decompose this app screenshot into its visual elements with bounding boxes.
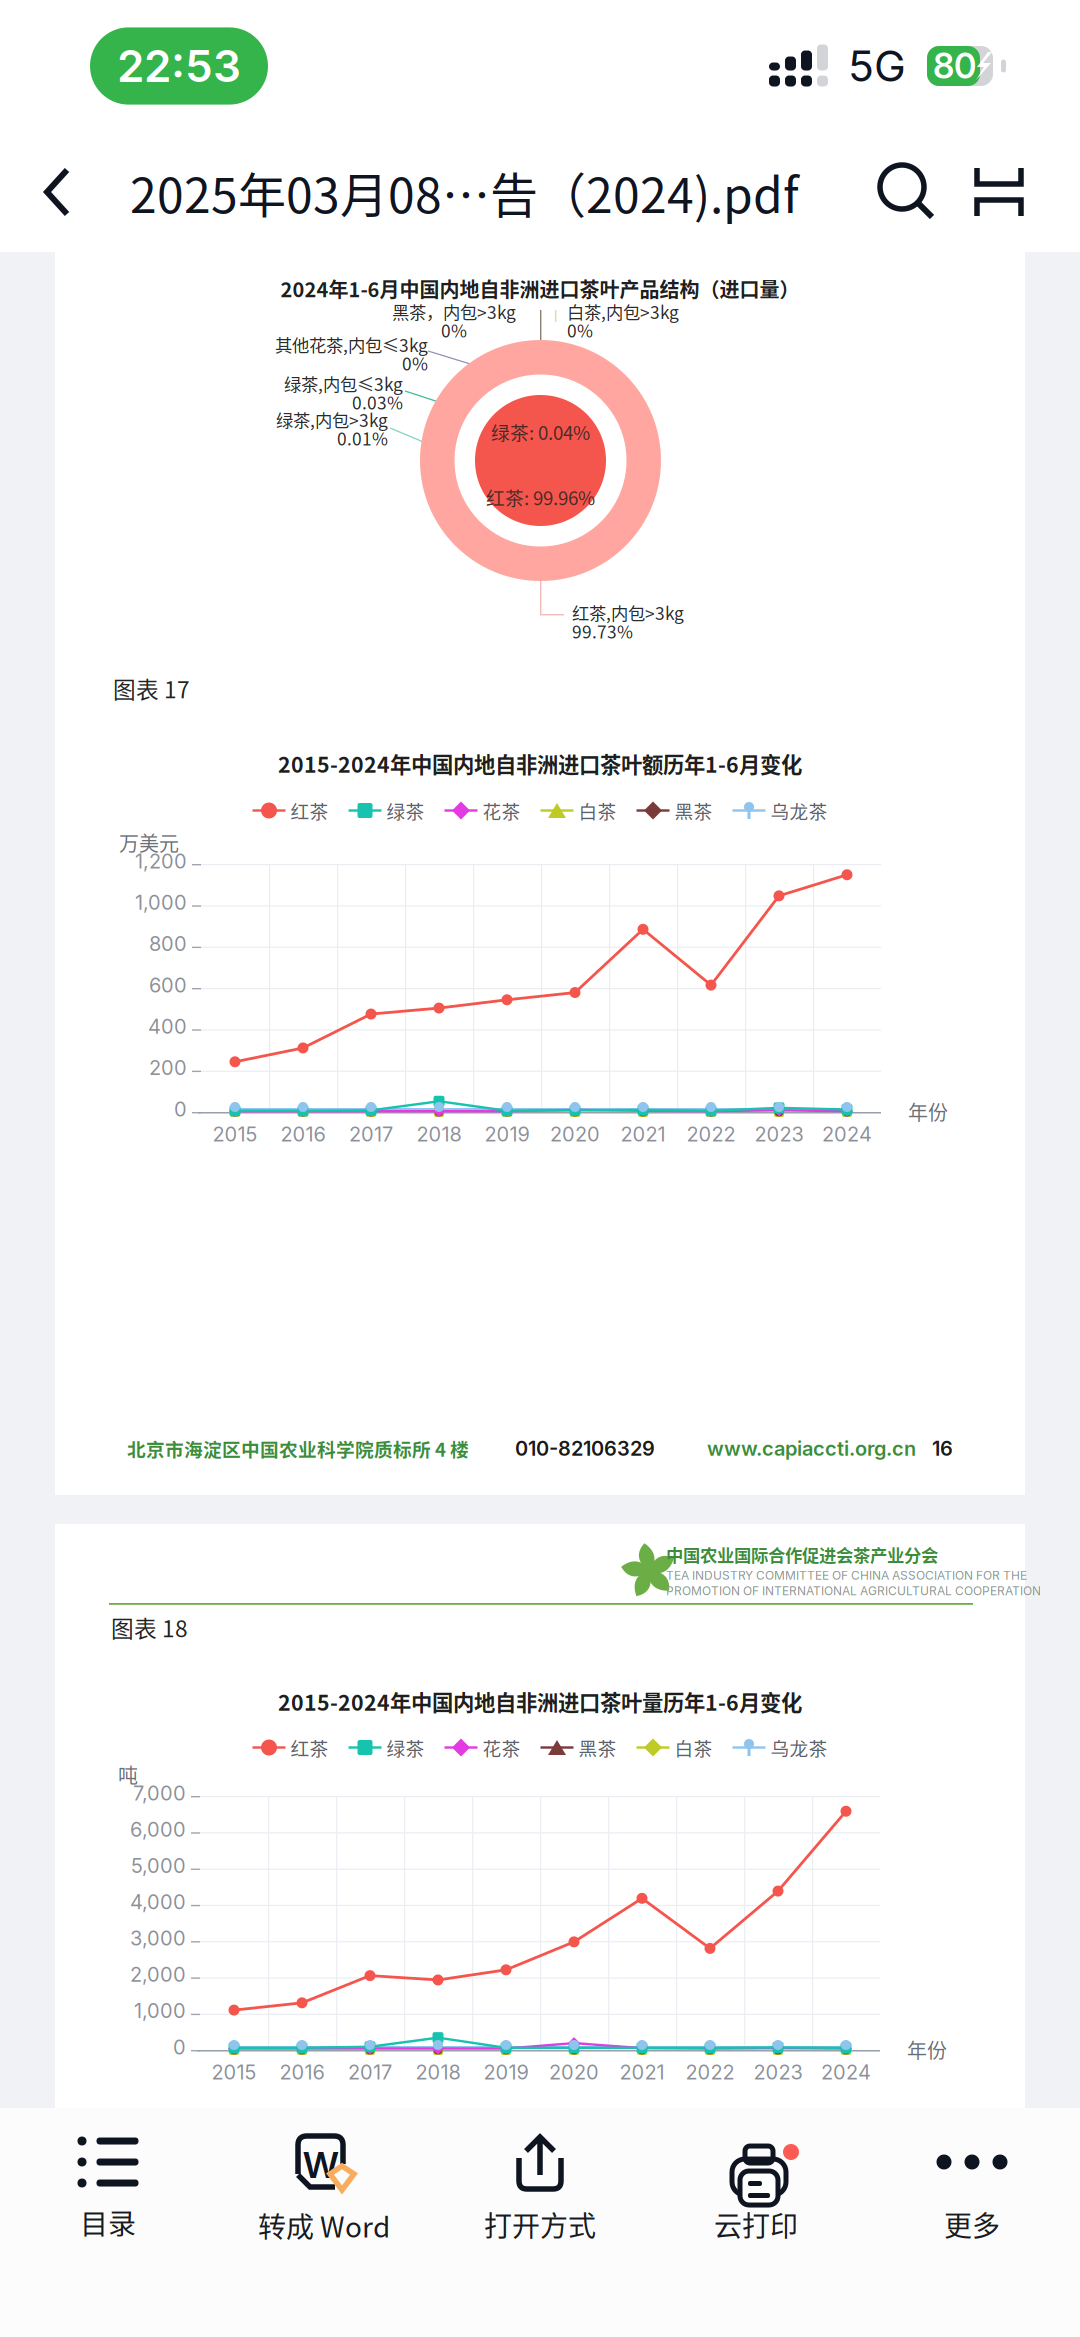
staticText: 0 (174, 1097, 187, 1121)
staticText: 白茶 (578, 797, 616, 824)
staticText: 2021 (620, 1122, 665, 1146)
button[interactable]: Fit page (956, 144, 1042, 240)
button[interactable]: 云打印 (648, 2109, 864, 2256)
staticText: 2020 (550, 1122, 600, 1146)
button[interactable]: W (216, 2108, 432, 2257)
staticText: 6,000 (130, 1817, 186, 1841)
staticText: 年份 (907, 2035, 947, 2064)
staticText: 2021 (619, 2060, 664, 2084)
staticText: 中国农业国际合作促进会茶产业分会 (666, 1542, 938, 1567)
staticText: 红茶 (290, 797, 328, 824)
staticText: 红茶,内包>3kg (572, 600, 684, 625)
staticText: 打开方式 (484, 2204, 596, 2244)
staticText: 2017 (349, 1122, 393, 1146)
staticText: 0 (173, 2035, 186, 2059)
staticText: 黑茶 (578, 1734, 616, 1761)
staticText: 7,000 (133, 1781, 186, 1805)
staticText: 4,000 (130, 1890, 186, 1914)
staticText: 2016 (280, 1122, 325, 1146)
staticText: 2024 (821, 2060, 871, 2084)
staticText: 花茶 (482, 797, 520, 824)
button[interactable]: 目录 (0, 2111, 216, 2254)
staticText: 2019 (484, 1122, 529, 1146)
staticText: 红茶: 99.96% (486, 483, 595, 510)
staticText: 2018 (416, 1122, 461, 1146)
staticText: 乌龙茶 (770, 1734, 827, 1761)
staticText: W (303, 2143, 339, 2187)
staticText: 600 (149, 973, 187, 997)
staticText: 2022 (686, 1122, 735, 1146)
staticText: 5G (848, 40, 906, 92)
staticText: 2023 (754, 1122, 803, 1146)
staticText: 200 (149, 1056, 187, 1080)
staticText: 99.73% (572, 618, 633, 644)
staticText: 2024年1-6月中国内地自非洲进口茶叶产品结构（进口量） (280, 274, 799, 303)
staticText: 2015-2024年中国内地自非洲进口茶叶量历年1-6月变化 (278, 1686, 802, 1717)
staticText: 年份 (908, 1097, 948, 1126)
staticText: PROMOTION OF INTERNATIONAL AGRICULTURAL … (666, 1584, 1041, 1598)
staticText: 白茶,内包>3kg (567, 299, 679, 324)
staticText: 绿茶,内包>3kg (276, 407, 388, 432)
staticText: 0% (402, 350, 428, 376)
staticText: 1,200 (135, 849, 187, 873)
staticText: 1,000 (134, 1999, 186, 2023)
staticText: 北京市海淀区中国农业科学院质标所 4 楼 (127, 1435, 469, 1462)
staticText: 2,000 (130, 1962, 186, 1987)
staticText: 2022 (685, 2060, 734, 2084)
staticText: 2017 (348, 2060, 392, 2084)
button[interactable]: Back (0, 144, 130, 240)
button[interactable]: Search (858, 143, 956, 241)
staticText: 万美元 (119, 828, 179, 857)
staticText: 800 (149, 932, 187, 956)
staticText: 黑茶，内包>3kg (392, 299, 516, 324)
staticText: 80 (933, 45, 976, 87)
staticText: 22:53 (117, 39, 241, 93)
staticText: 绿茶: 0.04% (491, 418, 590, 445)
staticText: 2023 (753, 2060, 802, 2084)
staticText: 2024 (822, 1122, 872, 1146)
staticText: 目录 (80, 2202, 136, 2242)
staticText: 红茶 (290, 1734, 328, 1761)
staticText: 云打印 (714, 2204, 798, 2244)
staticText: 0.03% (352, 389, 403, 415)
staticText: 0.01% (337, 425, 388, 451)
staticText: 400 (148, 1014, 187, 1038)
staticText: 2020 (549, 2060, 599, 2084)
staticText: 2018 (415, 2060, 460, 2084)
staticText: 更多 (944, 2204, 1000, 2244)
staticText: 吨 (118, 1760, 138, 1789)
staticText: 2016 (279, 2060, 324, 2084)
staticText: 010-82106329 (515, 1436, 655, 1461)
staticText: 2019 (483, 2060, 528, 2084)
staticText: 图表 18 (111, 1611, 188, 1644)
staticText: 其他花茶,内包≤3kg (275, 332, 428, 357)
staticText: 花茶 (482, 1734, 520, 1761)
staticText: 绿茶 (386, 797, 424, 824)
staticText: 绿茶 (386, 1734, 424, 1761)
staticText: 5,000 (131, 1854, 186, 1878)
staticText: 乌龙茶 (770, 797, 827, 824)
staticText: 转成 Word (258, 2205, 390, 2245)
staticText: www.capiaccti.org.cn (707, 1436, 916, 1461)
staticText: 2015-2024年中国内地自非洲进口茶叶额历年1-6月变化 (278, 748, 802, 779)
staticText: 0% (567, 317, 593, 343)
staticText: 图表 17 (113, 672, 190, 705)
staticText: 黑茶 (674, 797, 712, 824)
staticText: 3,000 (130, 1926, 186, 1950)
button[interactable]: 打开方式 (432, 2109, 648, 2256)
button[interactable]: 更多 (864, 2109, 1080, 2256)
staticText: 1,000 (135, 890, 187, 914)
staticText: 0% (441, 317, 467, 343)
staticText: 白茶 (674, 1734, 712, 1761)
staticText: 绿茶,内包≤3kg (284, 371, 403, 396)
staticText: 16 (932, 1436, 953, 1461)
staticText: 2015 (212, 1122, 257, 1146)
staticText: 2025年03月08…告（2024).pdf (130, 157, 799, 227)
staticText: TEA INDUSTRY COMMITTEE OF CHINA ASSOCIAT… (666, 1568, 1027, 1583)
staticText: 2015 (211, 2060, 256, 2084)
